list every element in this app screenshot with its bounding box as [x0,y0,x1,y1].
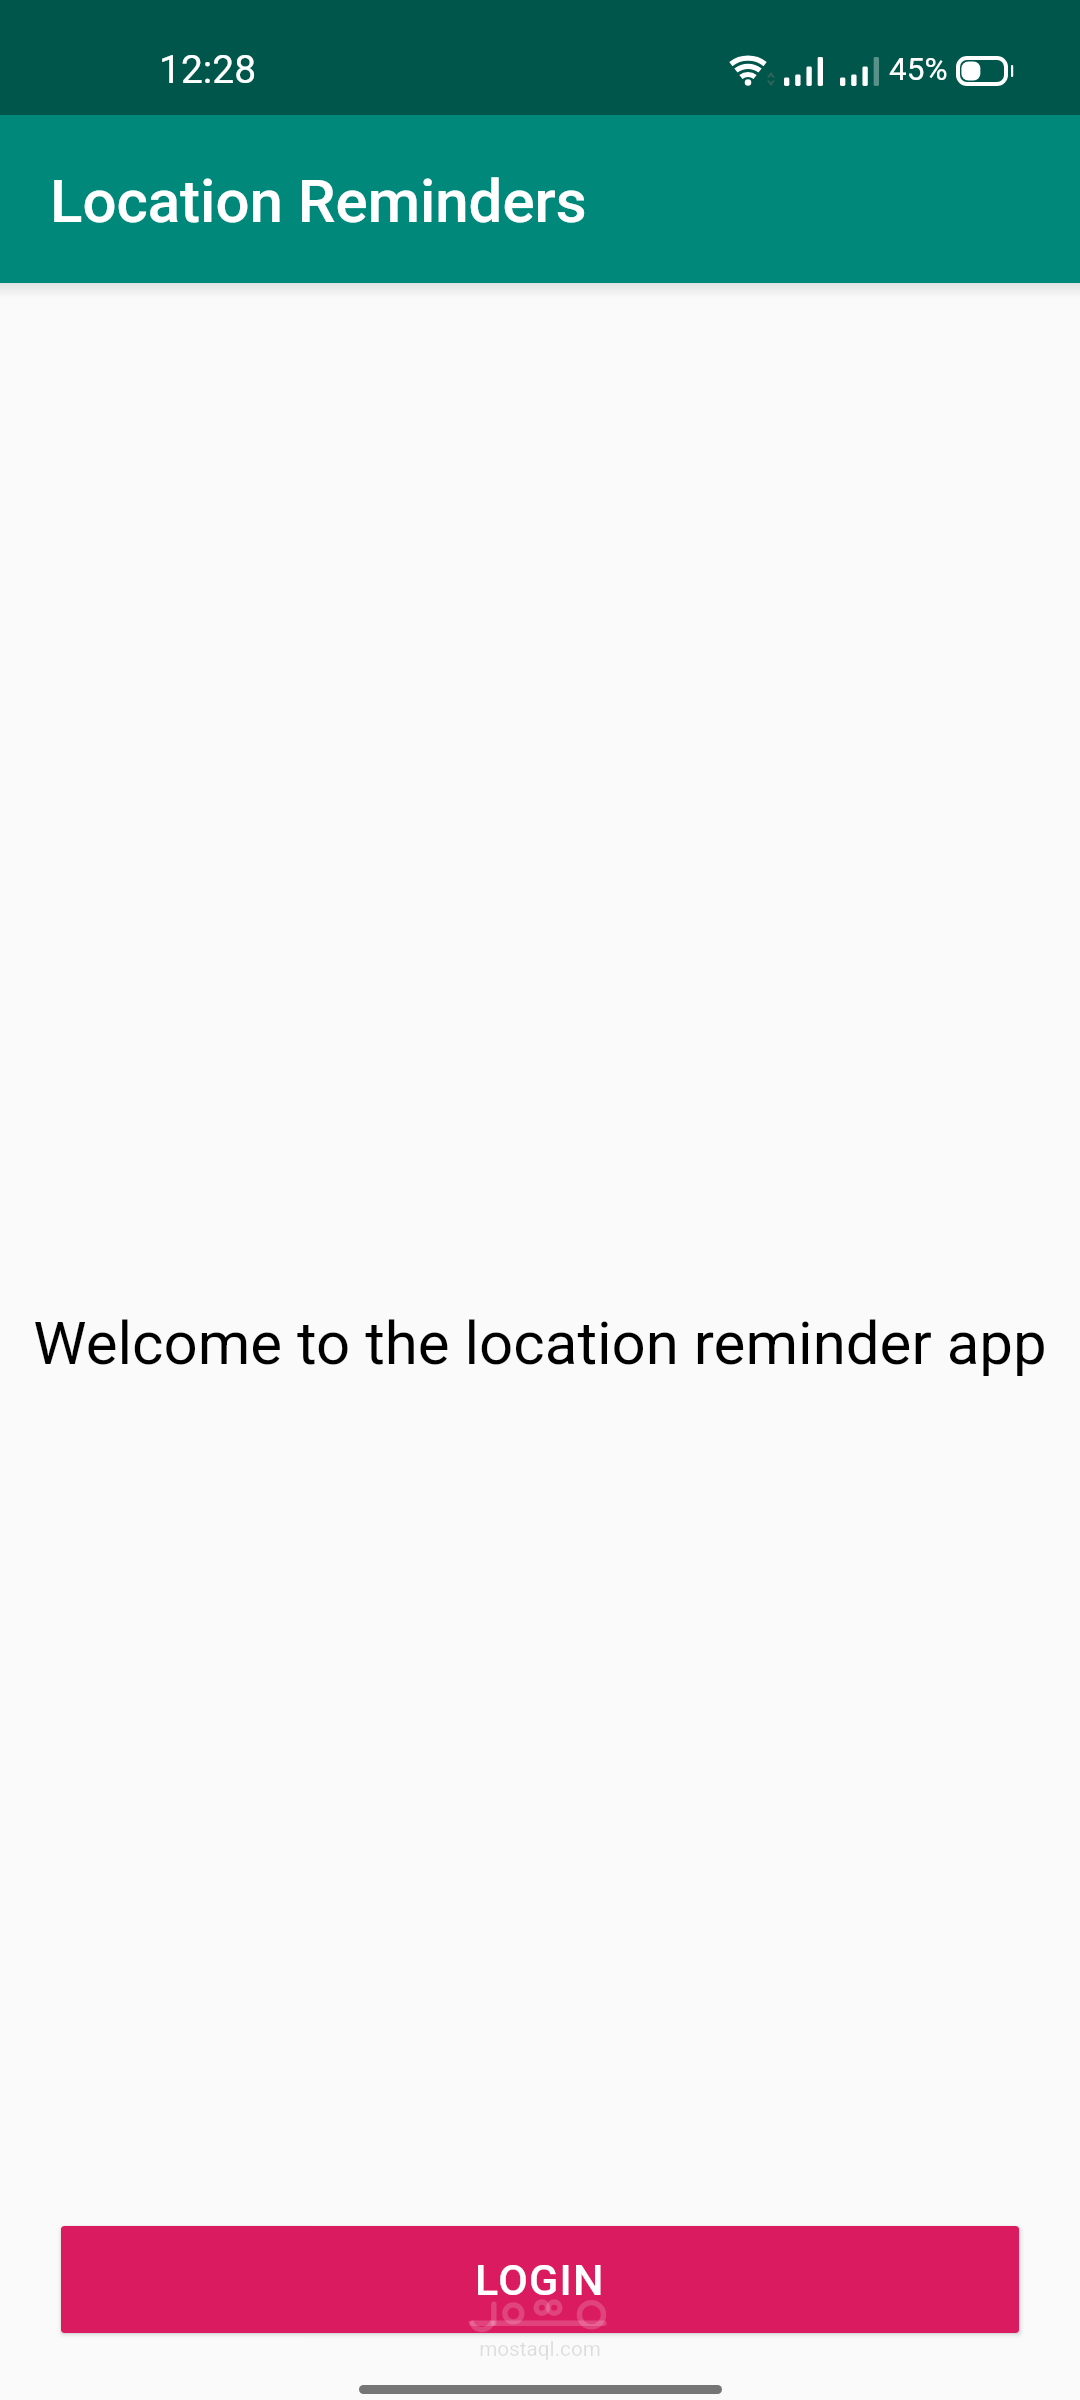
staticText: 45% [889,51,948,88]
other: Mobile data activity [767,72,775,86]
staticText: mostaql.com [0,2337,1080,2361]
other: Cellular signal [840,57,879,86]
other: Wi-Fi signal [729,55,767,86]
other: Cellular signal [784,57,823,86]
staticText: Location Reminders [50,166,587,236]
staticText: Welcome to the location reminder app [0,1308,1080,1378]
staticText: 12:28 [159,47,257,93]
staticText: LOGIN [475,2255,605,2305]
other: Battery 45 percent [956,56,1013,86]
button[interactable]: LOGIN [61,2226,1019,2333]
